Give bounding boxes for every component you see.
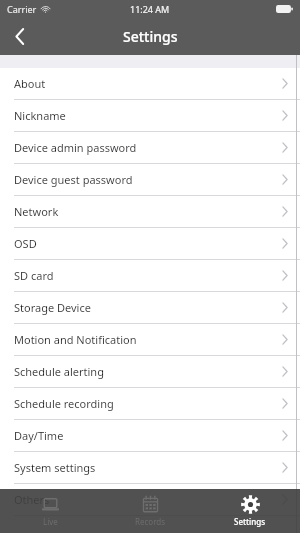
button[interactable]: Day/Time <box>0 420 300 452</box>
staticText: Day/Time <box>14 428 64 443</box>
staticText: Settings <box>234 516 266 527</box>
button[interactable]: Settings <box>200 489 300 533</box>
button[interactable]: Network <box>0 196 300 228</box>
button[interactable]: Device guest password <box>0 164 300 196</box>
button[interactable]: System settings <box>0 452 300 484</box>
staticText: Others <box>14 492 50 507</box>
staticText: Schedule alerting <box>14 364 104 379</box>
staticText: Records <box>135 516 166 527</box>
staticText: Schedule recording <box>14 396 114 411</box>
staticText: 11:24 AM <box>130 3 170 15</box>
button[interactable]: About <box>0 68 300 100</box>
staticText: System settings <box>14 460 96 475</box>
button[interactable]: Others <box>0 484 300 516</box>
staticText: Device guest password <box>14 172 133 187</box>
staticText: Settings <box>123 27 178 46</box>
button[interactable]: Schedule recording <box>0 388 300 420</box>
staticText: SD card <box>14 268 54 283</box>
button[interactable]: Storage Device <box>0 292 300 324</box>
button[interactable]: Records <box>100 489 200 533</box>
staticText: Network <box>14 204 59 219</box>
staticText: Nickname <box>14 108 66 123</box>
button[interactable]: Live <box>0 489 100 533</box>
staticText: Carrier <box>7 3 37 15</box>
staticText: Motion and Notification <box>14 332 137 347</box>
staticText: OSD <box>14 236 37 251</box>
button[interactable]: Schedule alerting <box>0 356 300 388</box>
button[interactable]: Motion and Notification <box>0 324 300 356</box>
button[interactable]: Back <box>0 18 40 55</box>
staticText: Device admin password <box>14 140 137 155</box>
button[interactable]: Device admin password <box>0 132 300 164</box>
staticText: About <box>14 76 46 91</box>
staticText: Storage Device <box>14 300 91 315</box>
button[interactable]: Nickname <box>0 100 300 132</box>
staticText: Live <box>43 516 58 527</box>
button[interactable]: SD card <box>0 260 300 292</box>
button[interactable]: OSD <box>0 228 300 260</box>
